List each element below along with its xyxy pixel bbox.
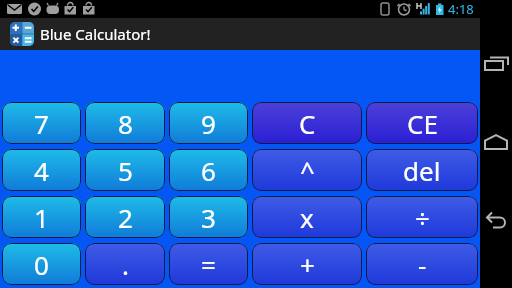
button[interactable]: = (169, 243, 248, 285)
button[interactable]: 3 (169, 196, 248, 238)
button[interactable]: ÷ (366, 196, 478, 238)
staticText: 6 (201, 153, 216, 188)
button[interactable] (480, 198, 512, 288)
staticText: - (418, 247, 427, 282)
staticText: 2 (118, 200, 133, 235)
staticText: 4 (34, 153, 49, 188)
button[interactable]: 2 (85, 196, 165, 238)
staticText: 7 (34, 106, 49, 141)
button[interactable]: . (85, 243, 165, 285)
staticText: 8 (118, 106, 133, 141)
button[interactable]: - (366, 243, 478, 285)
staticText: CE (407, 106, 438, 141)
button[interactable] (480, 108, 512, 198)
button[interactable]: 0 (2, 243, 81, 285)
button[interactable] (480, 18, 512, 108)
staticText: = (201, 247, 216, 282)
staticText: x (300, 200, 314, 235)
button[interactable]: 4 (2, 149, 81, 191)
button[interactable]: 8 (85, 102, 165, 144)
staticText: . (122, 247, 129, 282)
button[interactable]: CE (366, 102, 478, 144)
staticText: 3 (201, 200, 216, 235)
staticText: del (403, 153, 441, 188)
staticText: + (300, 247, 315, 282)
button[interactable]: x (252, 196, 362, 238)
button[interactable]: 9 (169, 102, 248, 144)
staticText: 5 (118, 153, 133, 188)
button[interactable]: + (252, 243, 362, 285)
button[interactable]: 6 (169, 149, 248, 191)
staticText: 1 (34, 200, 49, 235)
staticText: 0 (34, 247, 49, 282)
button[interactable]: 5 (85, 149, 165, 191)
staticText: Blue Calculator! (40, 24, 151, 44)
button[interactable]: 7 (2, 102, 81, 144)
staticText: 9 (201, 106, 216, 141)
button[interactable]: del (366, 149, 478, 191)
staticText: 4:18 (448, 0, 474, 18)
button[interactable]: C (252, 102, 362, 144)
staticText: C (299, 106, 316, 141)
staticText: ^ (300, 153, 315, 188)
staticText: ÷ (415, 200, 430, 235)
button[interactable]: ^ (252, 149, 362, 191)
button[interactable]: 1 (2, 196, 81, 238)
